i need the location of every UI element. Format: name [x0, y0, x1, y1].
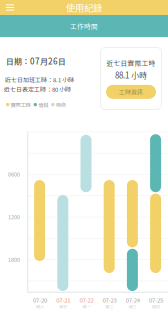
- staticText: 1800: [8, 255, 20, 263]
- staticText: 週四: [152, 304, 160, 309]
- staticText: 07-23: [103, 296, 117, 304]
- staticText: 07-20: [33, 296, 47, 304]
- staticText: 07-21: [56, 296, 70, 304]
- button[interactable]: 工作時間: [48, 15, 120, 37]
- staticText: 週日: [59, 304, 67, 309]
- staticText: 週一: [82, 304, 90, 309]
- staticText: 工時資訊: [119, 87, 143, 96]
- staticText: 1200: [8, 213, 20, 221]
- button[interactable]: 工時資訊: [106, 85, 156, 99]
- staticText: 07-24: [126, 296, 140, 304]
- staticText: 工作時間: [70, 21, 98, 31]
- staticText: 使用紀錄: [66, 1, 102, 14]
- staticText: 近七日表定工時：80 小時: [4, 85, 71, 93]
- staticText: 0600: [8, 170, 20, 178]
- staticText: 近七日加班工時：8.1 小時: [5, 75, 74, 84]
- staticText: 88.1 小時: [115, 69, 147, 81]
- staticText: 實際工時: [11, 101, 31, 108]
- staticText: 待命: [56, 101, 66, 108]
- staticText: 週三: [129, 304, 137, 309]
- staticText: 週二: [106, 304, 114, 309]
- staticText: 值班: [38, 101, 48, 108]
- staticText: 近七日實際工時: [106, 58, 155, 68]
- staticText: 07-22: [79, 296, 93, 304]
- button[interactable]: Menu: [0, 0, 20, 15]
- staticText: 日期：07月26日: [6, 55, 66, 67]
- staticText: 週六: [36, 304, 44, 309]
- staticText: 07-25: [149, 296, 163, 304]
